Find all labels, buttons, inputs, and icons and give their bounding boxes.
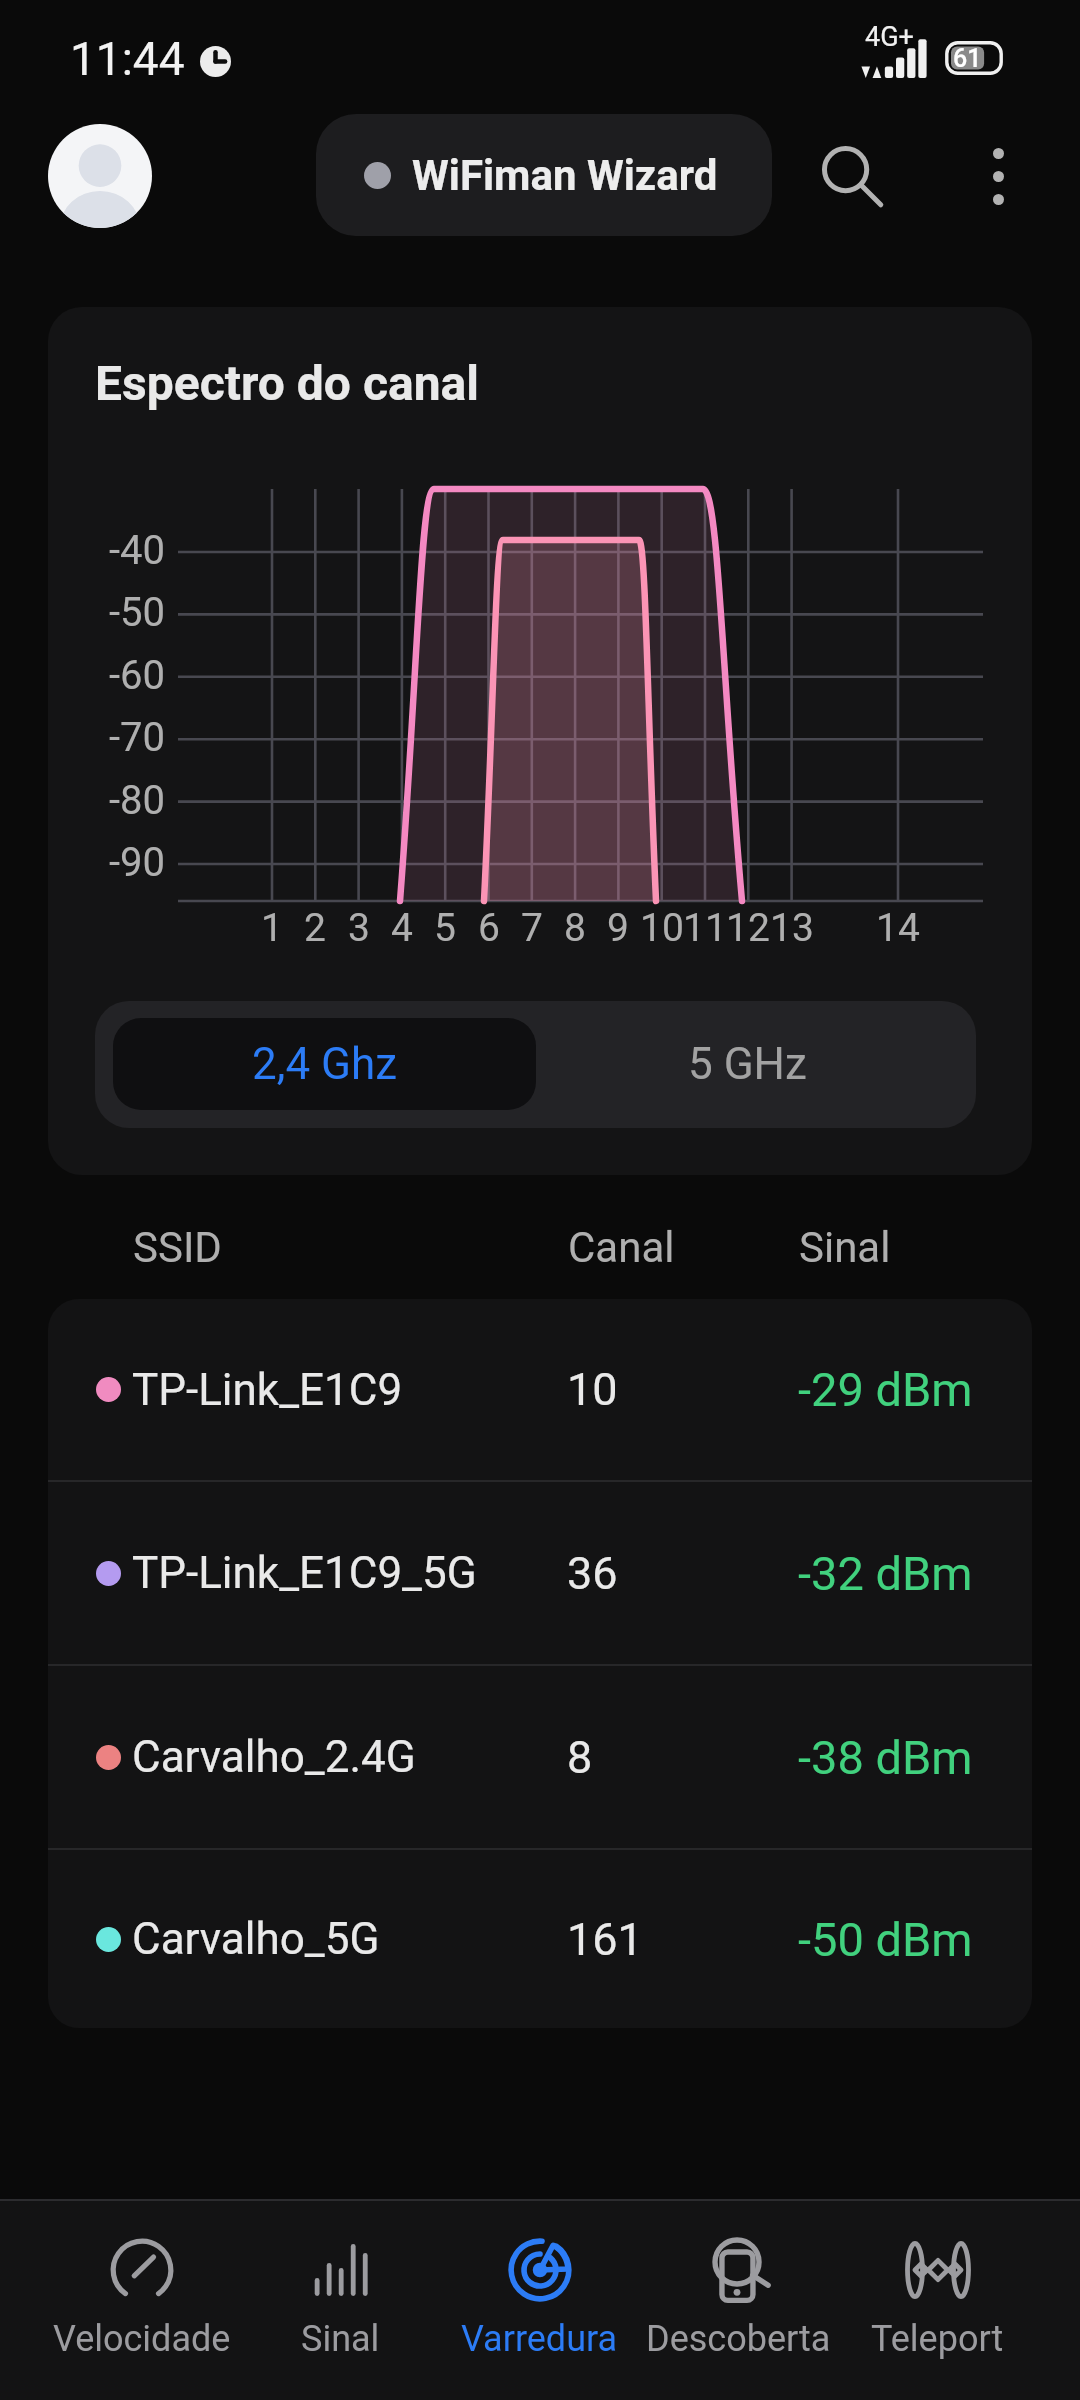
button[interactable]: Carvalho_5G [48,1850,1032,2028]
staticText: 10 [632,905,692,951]
staticText: Varredura [461,2318,618,2360]
button[interactable]: 2,4 Ghz [113,1018,536,1110]
staticText: Sinal [301,2318,380,2360]
staticText: 5 GHz [688,1038,807,1090]
staticText: 11 [675,905,735,951]
staticText: 2 [285,905,345,951]
staticText: 9 [588,905,648,951]
staticText: -50 [109,589,166,636]
staticText: -38 dBm [798,1730,973,1785]
staticText: 7 [502,905,562,951]
button[interactable]: Velocidade [43,2199,241,2400]
staticText: 3 [329,905,389,951]
staticText: Carvalho_2.4G [132,1731,416,1783]
staticText: 36 [567,1547,618,1600]
staticText: WiFiman Wizard [412,151,718,200]
button[interactable]: 5 GHz [536,1018,959,1110]
staticText: 4 [372,905,432,951]
staticText: 1 [242,905,302,951]
button[interactable]: Descoberta [639,2199,838,2400]
staticText: -70 [109,714,166,761]
button[interactable]: Search [804,128,900,224]
staticText: Espectro do canal [95,355,480,411]
staticText: -32 dBm [798,1546,973,1601]
button[interactable]: Carvalho_2.4G [48,1666,1032,1848]
staticText: 4G+ [865,21,914,53]
staticText: Velocidade [53,2318,231,2360]
staticText: -29 dBm [798,1362,973,1417]
staticText: Canal [568,1223,675,1272]
staticText: Teleport [871,2318,1004,2360]
staticText: 10 [567,1363,618,1416]
staticText: 11:44 [70,32,185,86]
button[interactable]: WiFiman Wizard [316,114,772,236]
button[interactable]: More options [950,128,1046,224]
staticText: 6 [459,905,519,951]
button[interactable]: TP-Link_E1C9_5G [48,1482,1032,1664]
staticText: 13 [762,905,822,951]
staticText: 5 [415,905,475,951]
staticText: 161 [567,1913,643,1966]
staticText: 8 [567,1731,593,1784]
staticText: TP-Link_E1C9 [132,1364,403,1416]
button[interactable]: Sinal [241,2199,440,2400]
button[interactable]: Profile [48,124,152,228]
staticText: -90 [109,839,166,886]
staticText: TP-Link_E1C9_5G [132,1547,477,1599]
staticText: 12 [718,905,778,951]
staticText: Descoberta [646,2318,831,2360]
staticText: -80 [109,777,166,824]
staticText: 14 [868,905,928,951]
staticText: 8 [545,905,605,951]
staticText: 61 [953,44,982,73]
staticText: 2,4 Ghz [252,1038,398,1090]
staticText: -60 [109,652,166,699]
staticText: Carvalho_5G [132,1913,380,1965]
button[interactable]: TP-Link_E1C9 [48,1299,1032,1480]
button[interactable]: Varredura [440,2199,639,2400]
staticText: -40 [109,527,166,574]
staticText: Sinal [799,1223,891,1272]
staticText: SSID [133,1223,222,1272]
button[interactable]: Teleport [838,2199,1037,2400]
staticText: -50 dBm [798,1912,973,1967]
